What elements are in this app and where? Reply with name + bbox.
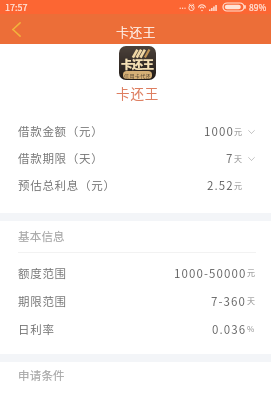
- staticText: 7: [226, 150, 234, 167]
- staticText: 信用卡代还: [124, 72, 152, 79]
- staticText: 期限范围: [18, 293, 67, 310]
- staticText: 89%: [249, 1, 267, 13]
- staticText: 0.036: [212, 321, 247, 338]
- staticText: 申请条件: [18, 367, 65, 384]
- staticText: 天: [234, 153, 242, 165]
- staticText: 元: [234, 180, 242, 192]
- staticText: 1000-50000: [174, 265, 247, 282]
- button[interactable]: 预估总利息（元）: [0, 172, 271, 199]
- staticText: 额度范围: [18, 265, 67, 282]
- staticText: 7-360: [211, 293, 247, 310]
- staticText: 借款金额（元）: [18, 123, 104, 140]
- staticText: %: [247, 323, 255, 335]
- button[interactable]: 期限范围: [0, 287, 271, 315]
- button[interactable]: 借款金额（元）: [0, 118, 271, 145]
- staticText: 日利率: [18, 321, 55, 338]
- staticText: 元: [247, 267, 255, 279]
- staticText: 17:57: [5, 1, 28, 14]
- staticText: 卡还王: [121, 56, 154, 73]
- staticText: 卡还王: [116, 22, 156, 41]
- staticText: 天: [247, 295, 255, 307]
- staticText: 基本信息: [18, 228, 65, 245]
- staticText: 1000: [204, 123, 234, 140]
- button[interactable]: 日利率: [0, 315, 271, 343]
- staticText: 借款期限（天）: [18, 150, 104, 167]
- staticText: 预估总利息（元）: [18, 177, 116, 194]
- button[interactable]: 额度范围: [0, 259, 271, 287]
- button[interactable]: 借款期限（天）: [0, 145, 271, 172]
- staticText: 元: [234, 126, 242, 138]
- staticText: 卡还王: [116, 83, 160, 103]
- button[interactable]: Back: [0, 14, 32, 44]
- staticText: 2.52: [207, 177, 234, 194]
